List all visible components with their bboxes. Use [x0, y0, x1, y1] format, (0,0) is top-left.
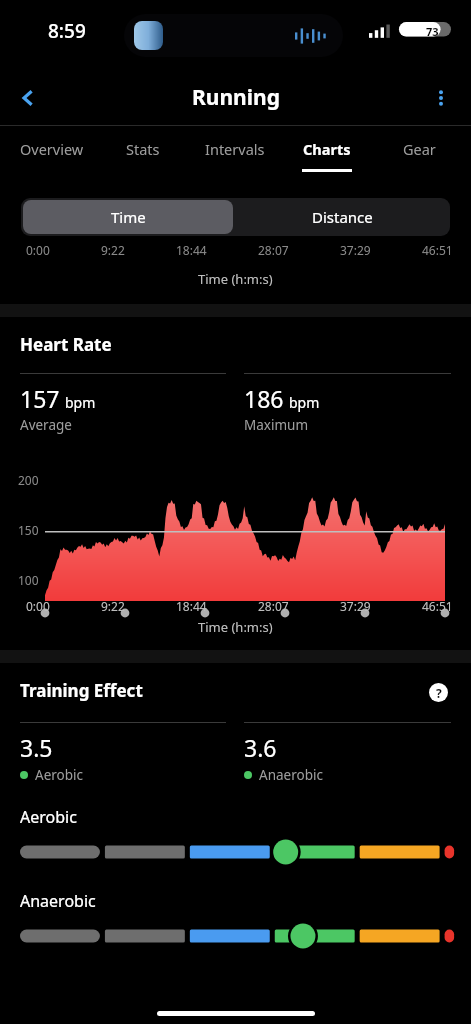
button[interactable]: Back: [6, 76, 50, 120]
staticText: 100: [18, 572, 39, 588]
staticText: Time: [111, 207, 146, 227]
button[interactable]: Gear: [373, 126, 465, 184]
button[interactable]: Charts: [281, 126, 373, 184]
staticText: ?: [436, 685, 442, 701]
staticText: Anaerobic: [259, 766, 323, 784]
staticText: 37:29: [340, 598, 371, 614]
staticText: 0:00: [26, 242, 50, 258]
staticText: 46:51: [422, 598, 453, 614]
staticText: Charts: [303, 139, 351, 159]
staticText: Intervals: [205, 139, 265, 159]
button[interactable]: Distance: [235, 198, 450, 236]
button[interactable]: Help: [425, 679, 451, 705]
staticText: 150: [18, 522, 39, 538]
staticText: 157: [20, 383, 60, 414]
staticText: 186: [244, 383, 284, 414]
button[interactable]: Intervals: [189, 126, 281, 184]
staticText: Distance: [312, 207, 373, 227]
staticText: Heart Rate: [20, 333, 112, 356]
staticText: 9:22: [101, 242, 125, 258]
staticText: bpm: [289, 393, 320, 412]
staticText: 200: [18, 472, 39, 488]
staticText: Training Effect: [20, 679, 143, 702]
staticText: bpm: [65, 393, 96, 412]
staticText: 3.5: [20, 732, 53, 763]
staticText: 0:00: [26, 598, 50, 614]
button[interactable]: Overview: [6, 126, 97, 184]
staticText: 73: [426, 24, 439, 39]
staticText: Time (h:m:s): [198, 270, 273, 288]
staticText: Running: [192, 83, 280, 112]
button[interactable]: Stats: [97, 126, 189, 184]
staticText: 9:22: [101, 598, 125, 614]
staticText: 18:44: [176, 242, 207, 258]
staticText: Stats: [126, 139, 160, 159]
staticText: Time (h:m:s): [198, 618, 273, 636]
staticText: 18:44: [176, 598, 207, 614]
staticText: 28:07: [258, 242, 289, 258]
staticText: 3.6: [244, 732, 277, 763]
staticText: Aerobic: [35, 766, 83, 784]
staticText: 8:59: [48, 18, 86, 44]
staticText: Overview: [20, 139, 84, 159]
button[interactable]: More options: [419, 76, 463, 120]
staticText: 37:29: [340, 242, 371, 258]
staticText: Gear: [403, 139, 436, 159]
staticText: 46:51: [422, 242, 453, 258]
staticText: Aerobic: [20, 806, 77, 828]
staticText: Anaerobic: [20, 890, 96, 912]
staticText: Maximum: [244, 416, 309, 434]
button[interactable]: Time: [23, 200, 233, 234]
staticText: 28:07: [258, 598, 289, 614]
staticText: Average: [20, 416, 72, 434]
